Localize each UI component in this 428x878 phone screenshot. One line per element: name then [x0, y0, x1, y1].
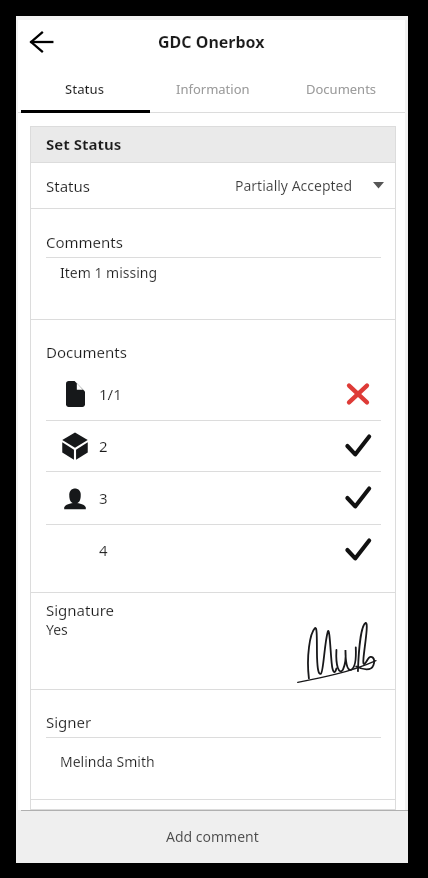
button[interactable]: Information — [149, 64, 277, 113]
button[interactable]: 2 — [30, 421, 396, 471]
staticText: 1/1 — [99, 384, 122, 404]
button[interactable]: 3 — [30, 472, 396, 524]
staticText: Melinda Smith — [60, 752, 155, 771]
button[interactable]: Documents — [277, 64, 405, 113]
staticText: 4 — [99, 540, 108, 560]
staticText: 2 — [99, 436, 108, 456]
button[interactable]: 1/1 — [30, 367, 396, 420]
staticText: Documents — [46, 342, 127, 362]
staticText: Set Status — [46, 134, 122, 154]
button[interactable]: 4 — [30, 525, 396, 575]
staticText: Documents — [306, 80, 377, 98]
staticText: Signer — [46, 712, 92, 732]
staticText: Status — [46, 176, 90, 196]
staticText: Add comment — [166, 827, 259, 846]
staticText: Information — [176, 80, 250, 98]
staticText: Comments — [46, 232, 123, 252]
button[interactable]: Add comment — [16, 810, 408, 863]
staticText: Yes — [46, 620, 68, 639]
staticText: Status — [65, 80, 105, 98]
button[interactable]: Status — [21, 64, 149, 113]
button[interactable]: Back — [20, 21, 62, 63]
staticText: Signature — [46, 600, 115, 620]
staticText: Item 1 missing — [60, 263, 158, 282]
staticText: 3 — [99, 488, 108, 508]
staticText: Partially Accepted — [235, 176, 353, 195]
button[interactable]: Status — [30, 163, 396, 208]
staticText: GDC Onerbox — [158, 31, 265, 53]
